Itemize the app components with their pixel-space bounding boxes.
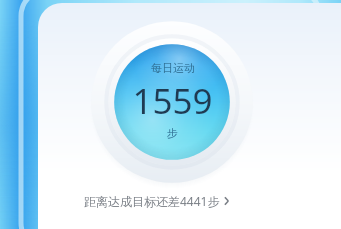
button[interactable]: 距离达成目标还差4441步	[84, 190, 231, 212]
staticText: 1559	[132, 77, 213, 125]
staticText: 步	[167, 126, 178, 140]
staticText: 距离达成目标还差4441步	[84, 193, 220, 209]
staticText: 每日运动	[151, 61, 195, 75]
button[interactable]: Daily activity steps	[90, 20, 254, 184]
